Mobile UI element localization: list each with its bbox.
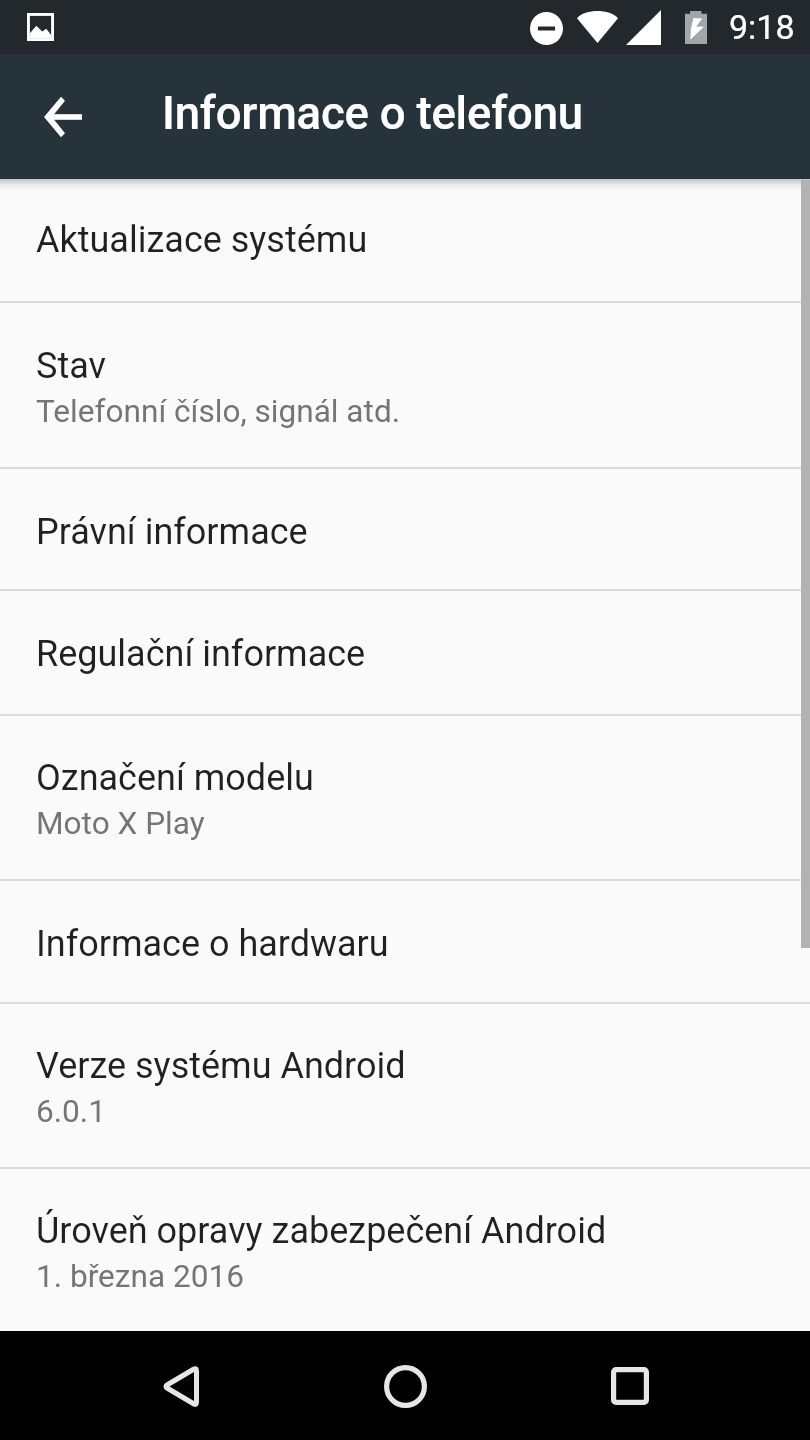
staticText: Verze systému Android — [36, 1045, 406, 1087]
staticText: Informace o telefonu — [162, 87, 583, 140]
staticText: Telefonní číslo, signál atd. — [36, 393, 401, 430]
button[interactable]: Úroveň opravy zabezpečení Android — [0, 1169, 810, 1331]
staticText: Regulační informace — [36, 633, 366, 675]
button[interactable]: Informace o hardwaru — [0, 881, 810, 1002]
staticText: Moto X Play — [36, 805, 205, 842]
staticText: Informace o hardwaru — [36, 923, 389, 965]
button[interactable]: Back — [140, 1346, 220, 1426]
staticText: Označení modelu — [36, 757, 314, 799]
button[interactable]: Právní informace — [0, 469, 810, 589]
button[interactable]: Verze systému Android — [0, 1004, 810, 1167]
staticText: 6.0.1 — [36, 1093, 106, 1130]
button[interactable]: Označení modelu — [0, 716, 810, 879]
button[interactable]: Recent apps — [590, 1346, 670, 1426]
button[interactable]: Home — [365, 1346, 445, 1426]
staticText: 1. března 2016 — [36, 1258, 244, 1295]
button[interactable]: Back — [27, 81, 99, 153]
button[interactable]: Regulační informace — [0, 591, 810, 714]
button[interactable]: Stav — [0, 303, 810, 467]
staticText: Stav — [36, 345, 106, 387]
staticText: 9:18 — [729, 7, 795, 47]
staticText: Aktualizace systému — [36, 219, 368, 261]
staticText: Právní informace — [36, 511, 308, 553]
staticText: Úroveň opravy zabezpečení Android — [36, 1210, 607, 1252]
button[interactable]: Aktualizace systému — [0, 179, 810, 301]
